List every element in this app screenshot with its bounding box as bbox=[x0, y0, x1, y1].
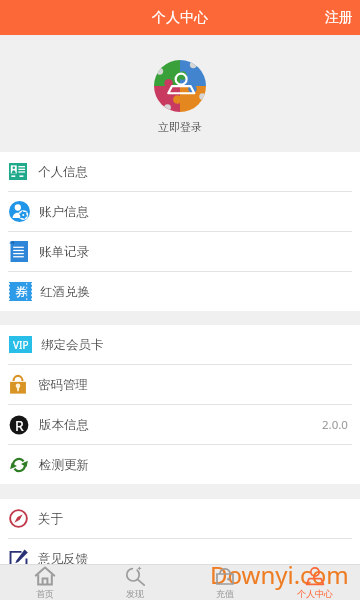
staticText: 关于 bbox=[38, 511, 63, 527]
staticText: 绑定会员卡 bbox=[41, 337, 104, 353]
button[interactable]: 账户信息 bbox=[0, 192, 360, 231]
button[interactable]: 立即登录 bbox=[0, 35, 360, 152]
button[interactable]: Home bbox=[0, 565, 90, 600]
staticText: 个人中心 bbox=[152, 9, 208, 27]
button[interactable]: Profile bbox=[270, 565, 360, 600]
staticText: VIP bbox=[13, 338, 29, 352]
staticText: 券 bbox=[15, 284, 27, 299]
button[interactable]: 意见反馈 bbox=[0, 539, 360, 578]
staticText: 注册 bbox=[325, 9, 353, 27]
staticText: 密码管理 bbox=[38, 377, 88, 393]
staticText: 首页 bbox=[36, 588, 54, 599]
staticText: 发现 bbox=[126, 588, 144, 599]
staticText: 版本信息 bbox=[39, 417, 89, 433]
staticText: R bbox=[15, 416, 24, 435]
button[interactable]: 账单记录 bbox=[0, 232, 360, 271]
button[interactable]: 个人信息 bbox=[0, 152, 360, 191]
button[interactable]: Recharge bbox=[180, 565, 270, 600]
staticText: 账户信息 bbox=[39, 204, 89, 220]
button[interactable]: 密码管理 bbox=[0, 365, 360, 404]
button[interactable]: R bbox=[0, 405, 360, 444]
button[interactable]: Discover bbox=[90, 565, 180, 600]
staticText: 2.0.0 bbox=[322, 417, 348, 433]
staticText: 立即登录 bbox=[158, 120, 202, 134]
staticText: 意见反馈 bbox=[38, 551, 88, 567]
button[interactable]: 检测更新 bbox=[0, 445, 360, 484]
button[interactable]: 券 bbox=[0, 272, 360, 311]
staticText: 检测更新 bbox=[39, 457, 89, 473]
button[interactable]: 注册 bbox=[318, 0, 360, 35]
button[interactable]: VIP bbox=[0, 325, 360, 364]
staticText: 红酒兑换 bbox=[40, 284, 90, 300]
staticText: 个人信息 bbox=[38, 164, 88, 180]
staticText: 个人中心 bbox=[297, 588, 333, 599]
staticText: 充值 bbox=[216, 588, 234, 599]
staticText: Downyi.com bbox=[210, 558, 349, 591]
staticText: 账单记录 bbox=[39, 244, 89, 260]
button[interactable]: 关于 bbox=[0, 499, 360, 538]
